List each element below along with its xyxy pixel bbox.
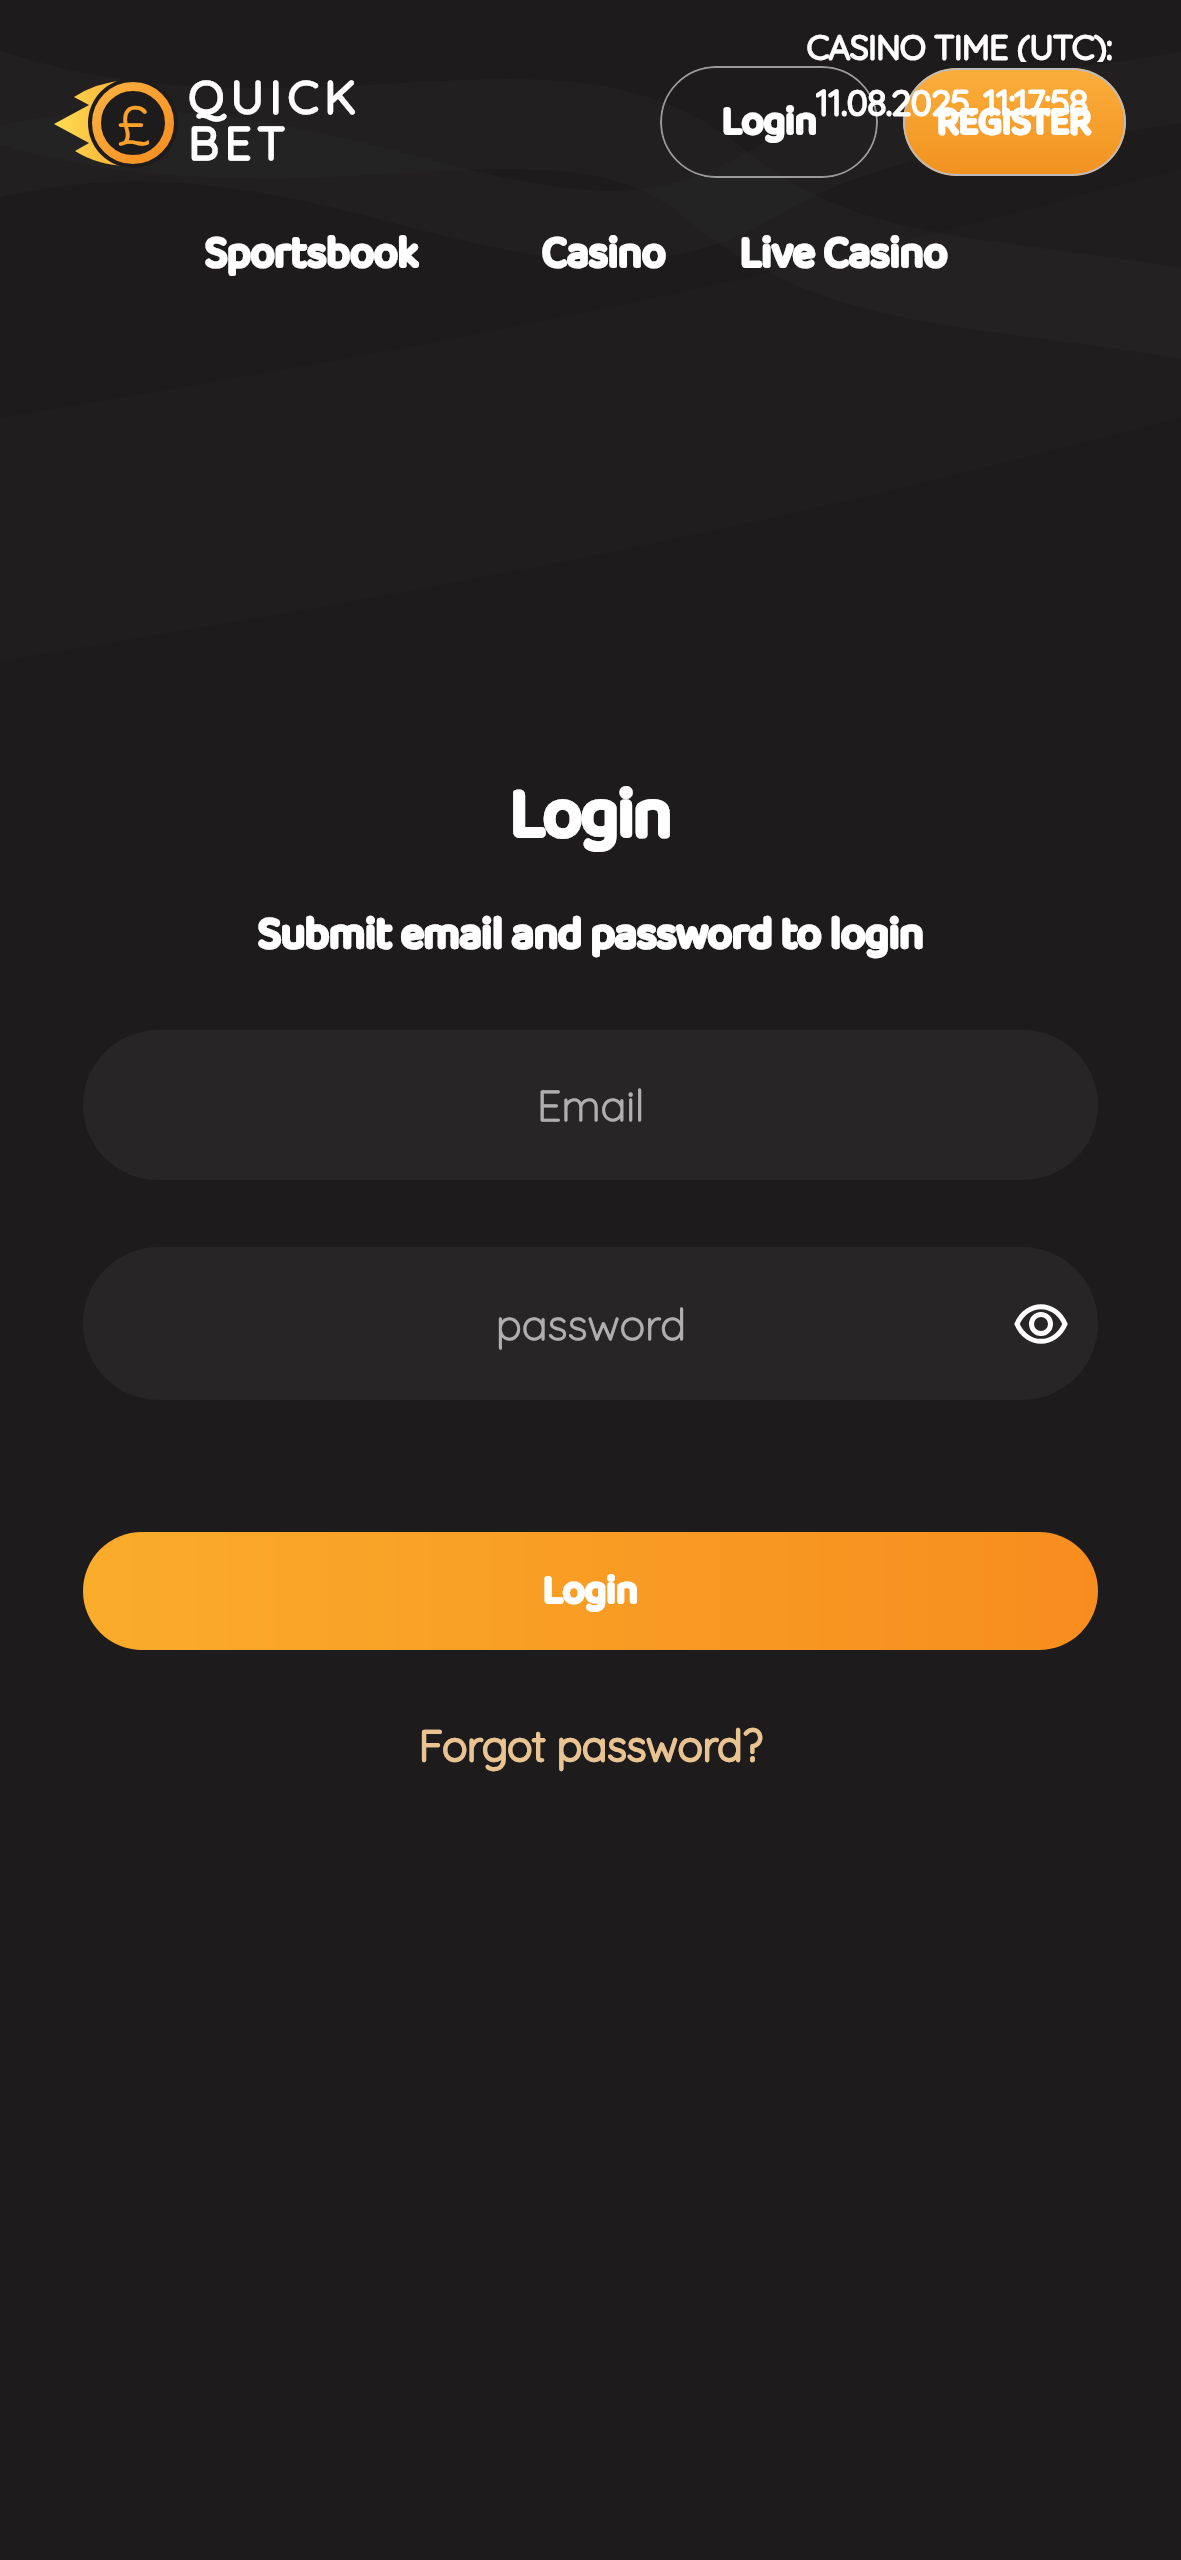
staticText: BET: [189, 114, 292, 170]
staticText: Login: [543, 1559, 638, 1623]
staticText: QUICK: [189, 68, 363, 124]
staticText: REGISTER: [937, 93, 1092, 152]
staticText: CASINO TIME (UTC):: [807, 26, 1112, 62]
staticText: Submit email and password to login: [258, 900, 924, 970]
button[interactable]: Login: [660, 66, 878, 178]
button[interactable]: Forgot password?: [419, 1719, 763, 1772]
button[interactable]: REGISTER: [903, 68, 1126, 176]
staticText: Casino: [542, 220, 666, 278]
staticText: Login: [722, 90, 817, 154]
staticText: Login: [510, 760, 672, 870]
staticText: BET: [189, 114, 292, 170]
staticText: Forgot password?: [419, 1719, 763, 1772]
staticText: Live Casino: [740, 220, 948, 278]
staticText: Casino: [542, 220, 666, 278]
button[interactable]: Live Casino: [714, 220, 974, 278]
staticText: Submit email and password to login: [258, 900, 924, 970]
staticText: Forgot password?: [419, 1719, 763, 1772]
staticText: Login: [722, 90, 817, 154]
staticText: 11.08.2025. 11:17:58: [816, 80, 1089, 120]
staticText: REGISTER: [937, 93, 1092, 152]
staticText: Login: [510, 760, 672, 870]
staticText: password: [496, 1297, 686, 1351]
button[interactable]: password: [83, 1247, 1098, 1400]
staticText: Live Casino: [740, 220, 948, 278]
staticText: Login: [543, 1559, 638, 1623]
staticText: QUICK: [189, 68, 363, 124]
staticText: Sportsbook: [205, 220, 419, 278]
button[interactable]: Email: [83, 1030, 1098, 1180]
staticText: CASINO TIME (UTC):: [807, 26, 1112, 62]
staticText: £: [117, 92, 149, 154]
staticText: 11.08.2025. 11:17:58: [816, 80, 1089, 120]
button[interactable]: Casino: [504, 220, 704, 278]
button[interactable]: [1016, 1305, 1066, 1343]
staticText: Sportsbook: [205, 220, 419, 278]
staticText: Email: [537, 1078, 645, 1132]
button[interactable]: Login: [83, 1532, 1098, 1650]
button[interactable]: Sportsbook: [187, 220, 437, 278]
